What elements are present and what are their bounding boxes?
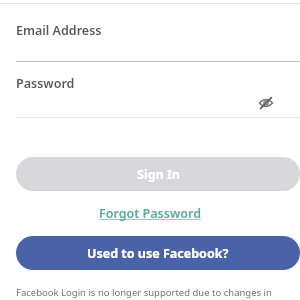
staticText: Password [16,75,75,92]
staticText: Facebook Login is no longer supported du… [16,286,272,299]
button[interactable]: Show password [256,93,276,113]
button[interactable]: Used to use Facebook? [16,236,300,270]
button[interactable]: Email Address [16,22,300,62]
staticText: Used to use Facebook? [87,245,229,262]
staticText: Sign In [137,166,180,183]
button[interactable]: Password [16,75,300,115]
staticText: Email Address [16,22,102,39]
button[interactable]: Sign In [16,157,300,191]
button[interactable]: Forgot Password [93,203,208,224]
staticText: Forgot Password [99,205,202,222]
